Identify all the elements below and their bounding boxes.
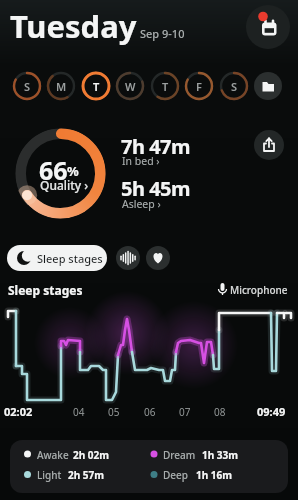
staticText: In bed ›	[122, 154, 160, 168]
staticText: Awake	[37, 448, 69, 462]
staticText: F	[196, 79, 202, 94]
staticText: T	[162, 79, 169, 94]
button[interactable]: Awake	[10, 440, 288, 493]
button[interactable]	[15, 128, 106, 219]
staticText: M	[56, 79, 67, 94]
staticText: Asleep ›	[122, 197, 161, 211]
staticText: 66	[39, 153, 68, 187]
staticText: Dream	[163, 448, 196, 462]
staticText: Light	[37, 468, 62, 482]
staticText: 2h 57m	[68, 468, 105, 482]
button[interactable]	[146, 246, 170, 270]
button[interactable]: F	[184, 71, 214, 101]
staticText: Microphone	[230, 283, 288, 297]
staticText: Sleep stages	[37, 251, 103, 266]
staticText: T	[93, 79, 100, 94]
staticText: 2h 02m	[73, 448, 110, 462]
staticText: S	[231, 79, 238, 94]
button[interactable]: T	[150, 71, 180, 101]
staticText: Tuesday	[10, 5, 137, 47]
staticText: 5h 45m	[121, 175, 191, 202]
staticText: 1h 33m	[202, 448, 239, 462]
button[interactable]: T	[81, 71, 111, 101]
staticText: Sep 9-10	[140, 26, 185, 41]
staticText: Quality ›	[40, 177, 89, 193]
button[interactable]	[116, 246, 140, 270]
button[interactable]	[121, 173, 221, 209]
staticText: 08	[214, 405, 226, 419]
button[interactable]: Microphone	[217, 280, 293, 298]
staticText: 1h 16m	[196, 468, 233, 482]
staticText: Sleep stages	[8, 282, 83, 298]
staticText: Deep	[163, 468, 188, 482]
staticText: 06	[144, 405, 156, 419]
staticText: 09:49	[257, 404, 286, 419]
staticText: S	[24, 79, 31, 94]
button[interactable]	[121, 130, 221, 166]
staticText: 02:02	[4, 404, 33, 419]
button[interactable]: S	[12, 71, 42, 101]
button[interactable]: M	[46, 71, 76, 101]
staticText: %	[67, 162, 79, 180]
button[interactable]: S	[219, 71, 249, 101]
staticText: 05	[108, 405, 120, 419]
staticText: 7h 47m	[121, 133, 191, 160]
button[interactable]: Sleep stages	[7, 245, 107, 271]
staticText: 04	[73, 405, 85, 419]
button[interactable]: W	[115, 71, 145, 101]
button[interactable]	[254, 130, 284, 160]
staticText: 07	[179, 405, 191, 419]
button[interactable]	[246, 5, 290, 49]
button[interactable]	[254, 72, 282, 100]
staticText: W	[125, 79, 136, 94]
